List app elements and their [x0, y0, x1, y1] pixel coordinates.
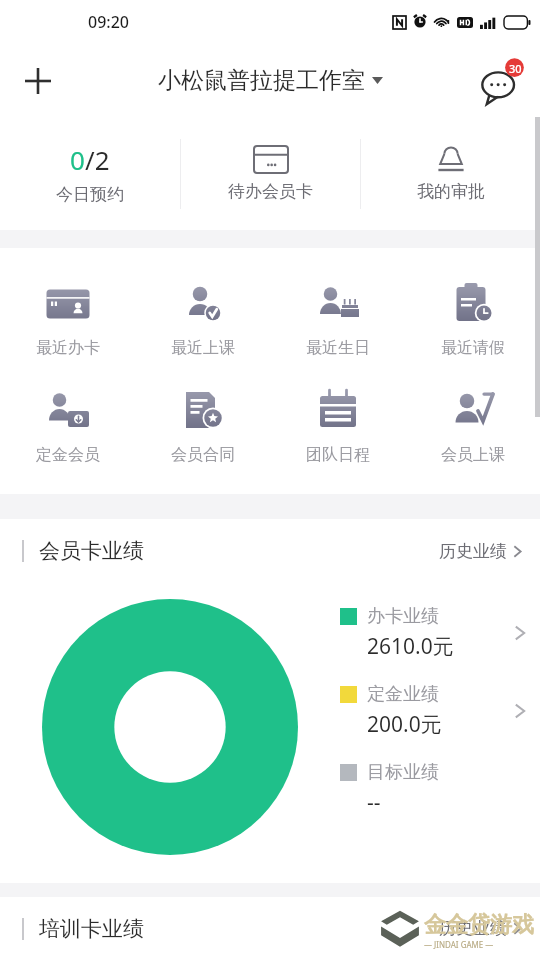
staticText: 历史业绩	[439, 918, 507, 939]
button[interactable]: 办卡业绩	[340, 605, 540, 661]
button[interactable]: Messages	[476, 55, 528, 107]
button[interactable]: Add	[14, 57, 62, 105]
button[interactable]: 小松鼠普拉提工作室	[158, 66, 383, 95]
staticText: 历史业绩	[439, 541, 507, 562]
staticText: 0	[70, 142, 85, 177]
staticText: 最近上课	[171, 338, 235, 358]
staticText: 我的审批	[417, 181, 485, 202]
staticText: 会员合同	[171, 445, 235, 465]
staticText: /2	[85, 142, 110, 177]
button[interactable]: 待办会员卡	[181, 117, 360, 230]
staticText: 团队日程	[306, 445, 370, 465]
staticText: — JINDAI GAME —	[424, 939, 494, 950]
staticText: 今日预约	[56, 184, 124, 205]
button[interactable]: 定金业绩	[340, 683, 540, 739]
button[interactable]: 目标业绩	[340, 761, 540, 817]
staticText: 最近办卡	[36, 338, 100, 358]
staticText: 30	[509, 61, 522, 76]
button[interactable]: 定金会员	[0, 371, 135, 478]
staticText: 办卡业绩	[367, 605, 439, 628]
staticText: 最近生日	[306, 338, 370, 358]
staticText: 200.0元	[367, 710, 442, 739]
staticText: 2610.0元	[367, 632, 454, 661]
staticText: 金金贷游戏	[424, 911, 534, 939]
button[interactable]: 我的审批	[361, 117, 540, 230]
staticText: 小松鼠普拉提工作室	[158, 66, 365, 95]
staticText: 目标业绩	[367, 761, 439, 784]
button[interactable]: 历史业绩	[439, 541, 522, 562]
staticText: 最近请假	[441, 338, 505, 358]
staticText: 待办会员卡	[228, 181, 313, 202]
button[interactable]: 最近生日	[270, 264, 405, 371]
button[interactable]: 最近办卡	[0, 264, 135, 371]
button[interactable]: 最近请假	[405, 264, 540, 371]
button[interactable]: 团队日程	[270, 371, 405, 478]
staticText: 会员卡业绩	[39, 538, 144, 564]
button[interactable]: 历史业绩	[439, 918, 522, 939]
staticText: 培训卡业绩	[39, 916, 144, 942]
button[interactable]: 会员合同	[135, 371, 270, 478]
staticText: 09:20	[88, 11, 129, 33]
staticText: 会员上课	[441, 445, 505, 465]
staticText: 定金业绩	[367, 683, 439, 706]
button[interactable]: 最近上课	[135, 264, 270, 371]
button[interactable]: 0	[0, 117, 180, 230]
staticText: 定金会员	[36, 445, 100, 465]
button[interactable]: 会员上课	[405, 371, 540, 478]
staticText: --	[367, 788, 381, 817]
